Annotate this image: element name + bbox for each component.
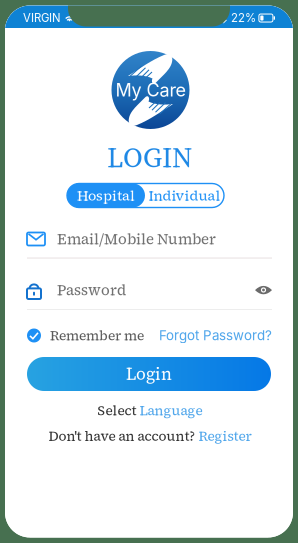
staticText: Select <box>97 401 139 420</box>
staticText: Email/Mobile Number <box>57 229 216 249</box>
button[interactable]: Register <box>198 427 251 445</box>
staticText: Register <box>198 427 251 445</box>
staticText: Don't have an account? <box>48 427 198 445</box>
button[interactable]: Forgot Password? <box>159 327 272 343</box>
staticText: Hospital <box>77 186 135 205</box>
staticText: Login <box>126 363 172 385</box>
button[interactable]: Login <box>27 357 271 391</box>
staticText: VIRGIN <box>23 11 61 25</box>
staticText: 22% <box>231 11 256 25</box>
staticText: Individual <box>148 186 220 205</box>
staticText: LOGIN <box>107 138 193 177</box>
staticText: Language <box>139 401 202 420</box>
button[interactable]: Hospital <box>67 183 145 207</box>
staticText: My Care <box>115 79 185 101</box>
staticText: Forgot Password? <box>159 327 272 343</box>
button[interactable]: Language <box>139 401 202 420</box>
staticText: Remember me <box>50 326 144 345</box>
button[interactable]: Show password <box>255 285 272 295</box>
button[interactable]: Individual <box>145 183 224 207</box>
staticText: Password <box>57 280 126 300</box>
button[interactable]: Remember me <box>27 326 144 345</box>
